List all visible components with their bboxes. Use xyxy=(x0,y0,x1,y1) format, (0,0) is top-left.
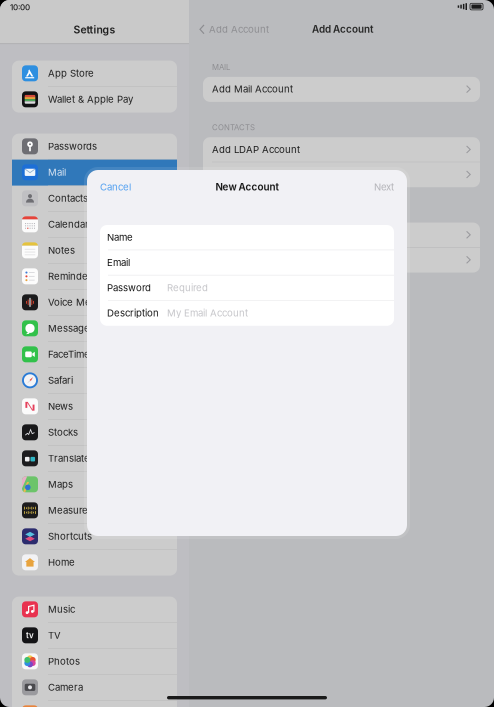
staticText: Voice Memos xyxy=(48,296,110,308)
staticText: Wallet & Apple Pay xyxy=(48,93,133,105)
staticText: FaceTime xyxy=(48,348,90,360)
staticText: News xyxy=(48,400,73,412)
staticText: tv xyxy=(26,630,34,640)
staticText: Add Account xyxy=(312,23,373,35)
staticText: Add Mail Account xyxy=(212,83,293,95)
staticText: Contacts xyxy=(48,192,88,204)
button[interactable]: Next xyxy=(361,175,407,199)
staticText: Notes xyxy=(48,244,75,256)
button[interactable]: Safari xyxy=(12,368,177,394)
button[interactable]: Add CardDAV Account xyxy=(203,162,480,187)
staticText: MAIL xyxy=(212,62,230,72)
button[interactable]: Notes xyxy=(12,238,177,264)
staticText: Stocks xyxy=(48,426,78,438)
staticText: App Store xyxy=(48,67,94,79)
staticText: TV xyxy=(48,629,61,641)
staticText: Next xyxy=(374,181,394,193)
button[interactable]: App Store xyxy=(12,61,177,87)
staticText: Settings xyxy=(73,23,115,36)
button[interactable]: Wallet & Apple Pay xyxy=(12,87,177,113)
staticText: Name xyxy=(107,231,133,243)
staticText: Safari xyxy=(48,374,73,386)
staticText: Passwords xyxy=(48,140,97,152)
staticText: Messages xyxy=(48,322,95,334)
staticText: Add LDAP Account xyxy=(212,144,300,155)
button[interactable]: Measure xyxy=(12,498,177,524)
staticText: Camera xyxy=(48,681,83,693)
button[interactable]: Photos xyxy=(12,649,177,675)
button[interactable]: Maps xyxy=(12,472,177,498)
button[interactable]: Add Mail Account xyxy=(203,77,480,102)
button[interactable]: Home xyxy=(12,550,177,576)
staticText: Description xyxy=(107,307,159,319)
button[interactable]: Add CalDAV Account xyxy=(203,223,480,248)
button[interactable]: Add LDAP Account xyxy=(203,137,480,162)
staticText: Maps xyxy=(48,478,73,490)
button[interactable]: News xyxy=(12,394,177,420)
button[interactable]: Stocks xyxy=(12,420,177,446)
staticText: Calendar xyxy=(48,218,89,230)
button[interactable]: Mail xyxy=(12,160,177,186)
button[interactable]: Reminders xyxy=(12,264,177,290)
staticText: Password xyxy=(107,282,151,293)
button[interactable]: Voice Memos xyxy=(12,290,177,316)
button[interactable]: Messages xyxy=(12,316,177,342)
staticText: Measure xyxy=(48,504,88,516)
button[interactable]: Add Account xyxy=(189,18,275,40)
button[interactable]: FaceTime xyxy=(12,342,177,368)
button[interactable]: tv xyxy=(12,623,177,649)
button[interactable]: Shortcuts xyxy=(12,524,177,550)
staticText: My Email Account xyxy=(167,307,248,319)
button[interactable]: Cancel xyxy=(87,175,144,199)
staticText: Music xyxy=(48,603,75,615)
staticText: Required xyxy=(167,282,208,293)
staticText: 10:00 xyxy=(10,3,30,12)
staticText: Translate xyxy=(48,452,90,464)
staticText: Cancel xyxy=(100,181,131,193)
staticText: Home xyxy=(48,556,75,568)
button[interactable]: Contacts xyxy=(12,186,177,212)
staticText: Photos xyxy=(48,655,80,667)
button[interactable]: Camera xyxy=(12,675,177,701)
button[interactable]: Translate xyxy=(12,446,177,472)
staticText: Email xyxy=(107,257,130,268)
staticText: New Account xyxy=(215,181,278,193)
staticText: Reminders xyxy=(48,270,97,282)
staticText: Add CardDAV Account xyxy=(212,169,316,180)
staticText: CONTACTS xyxy=(212,123,255,132)
staticText: Shortcuts xyxy=(48,530,92,542)
button[interactable]: Calendar xyxy=(12,212,177,238)
staticText: Mail xyxy=(48,166,66,178)
staticText: Add Account xyxy=(209,23,269,35)
button[interactable]: Add Subscribed Calendar xyxy=(203,248,480,273)
button[interactable]: Music xyxy=(12,597,177,623)
button[interactable]: Passwords xyxy=(12,134,177,160)
button[interactable]: Books xyxy=(12,701,177,707)
